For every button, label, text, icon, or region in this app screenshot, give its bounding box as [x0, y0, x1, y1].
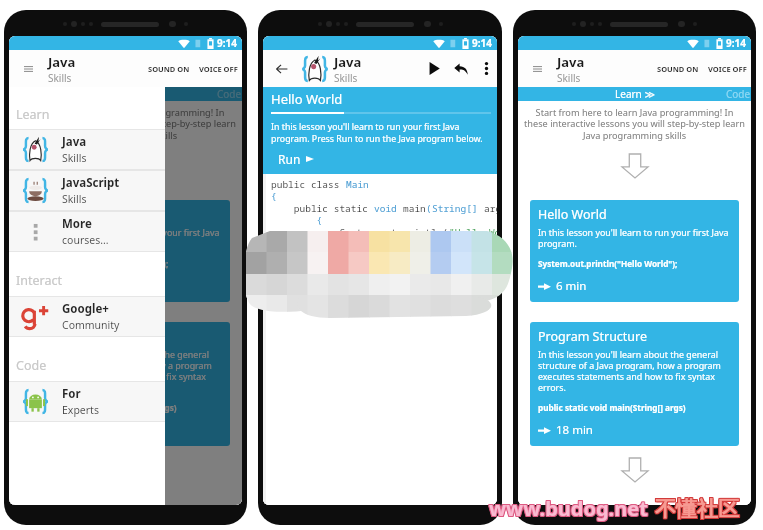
staticText: 不懂社区: [656, 497, 740, 523]
staticText: void: [374, 202, 403, 214]
staticText: Java: [557, 53, 585, 71]
staticText: Learn: [16, 106, 50, 123]
staticText: Skills: [334, 71, 358, 85]
staticText: Skills: [62, 151, 87, 165]
staticText: www.budog.net: [489, 494, 648, 521]
staticText: Program Structure: [538, 328, 648, 345]
button[interactable]: SOUND ON: [145, 50, 193, 87]
staticText: 不懂社区: [655, 496, 739, 522]
button[interactable]: Code: [207, 87, 242, 101]
staticText: public static: [271, 202, 374, 214]
staticText: In this lesson you'll learn about the ge…: [29, 348, 222, 394]
staticText: public class: [271, 178, 346, 190]
staticText: 9:14: [726, 36, 746, 50]
staticText: {: [271, 190, 277, 202]
staticText: Hello World: [271, 90, 343, 108]
staticText: public static void main(String[] args): [538, 402, 686, 413]
staticText: JavaScript: [62, 175, 120, 191]
staticText: Java: [48, 53, 76, 71]
button[interactable]: Hello World: [530, 200, 739, 302]
staticText: 18 min: [556, 422, 593, 438]
staticText: For: [62, 386, 81, 402]
staticText: 9:14: [217, 36, 237, 50]
staticText: 不懂社区: [654, 497, 738, 523]
button[interactable]: SOUND ON: [654, 50, 702, 87]
staticText: Start from here to learn Java programmin…: [14, 106, 237, 142]
staticText: Interact: [16, 272, 62, 289]
staticText: www.budog.net: [489, 495, 648, 522]
button[interactable]: JavaScript: [9, 170, 165, 211]
staticText: SOUND ON: [657, 64, 699, 74]
staticText: Program Structure: [29, 328, 139, 345]
staticText: "Hello World": [449, 226, 497, 238]
staticText: More: [62, 216, 92, 232]
button[interactable]: Google+: [9, 296, 165, 337]
button[interactable]: Undo: [447, 50, 475, 87]
button[interactable]: Learn ≫: [603, 87, 667, 101]
staticText: (: [426, 202, 432, 214]
staticText: String[]: [432, 202, 484, 214]
staticText: 不懂社区: [654, 495, 738, 521]
staticText: Learn ≫: [615, 87, 655, 101]
button[interactable]: Program Structure: [21, 322, 230, 446]
button[interactable]: Run: [271, 150, 314, 168]
staticText: System: [271, 226, 374, 238]
staticText: VOICE OFF: [708, 64, 747, 74]
staticText: main: [403, 202, 426, 214]
button[interactable]: Hello World: [21, 200, 230, 302]
staticText: {: [271, 214, 323, 226]
staticText: arg: [484, 202, 497, 214]
staticText: www.budog.net: [488, 494, 647, 521]
staticText: Code: [217, 87, 242, 101]
staticText: Java: [334, 53, 362, 71]
button[interactable]: Open navigation drawer: [9, 50, 48, 87]
staticText: www.budog.net: [490, 495, 649, 522]
button[interactable]: VOICE OFF: [702, 50, 751, 87]
staticText: www.budog.net: [489, 496, 648, 523]
staticText: Hello World: [538, 206, 607, 223]
staticText: public static void main(String[] args): [29, 402, 177, 413]
staticText: 不懂社区: [655, 497, 739, 523]
staticText: Community: [62, 318, 120, 332]
button[interactable]: More: [9, 211, 165, 252]
staticText: Java: [62, 134, 87, 150]
staticText: 不懂社区: [655, 495, 739, 521]
staticText: 不懂社区: [656, 495, 740, 521]
button[interactable]: More options: [475, 50, 497, 87]
staticText: Skills: [557, 71, 581, 85]
staticText: VOICE OFF: [199, 64, 238, 74]
staticText: .out.println(: [374, 226, 449, 238]
button[interactable]: Program Structure: [530, 322, 739, 446]
staticText: 不懂社区: [656, 496, 740, 522]
button[interactable]: Back: [263, 50, 300, 87]
staticText: In this lesson you'll learn to run your …: [538, 226, 731, 250]
staticText: Code: [16, 357, 47, 374]
staticText: In this lesson you'll learn about the ge…: [538, 348, 731, 394]
button[interactable]: Code: [716, 87, 751, 101]
staticText: 6 min: [47, 278, 78, 294]
staticText: www.budog.net: [490, 494, 649, 521]
staticText: System.out.println("Hello World");: [538, 258, 678, 269]
button[interactable]: Open navigation drawer: [518, 50, 557, 87]
staticText: Code: [726, 87, 751, 101]
staticText: courses...: [62, 233, 109, 247]
staticText: SOUND ON: [148, 64, 190, 74]
button[interactable]: For: [9, 381, 165, 422]
button[interactable]: Run: [421, 50, 447, 87]
staticText: System.out.println("Hello World");: [29, 258, 169, 269]
staticText: www.budog.net: [490, 496, 649, 523]
staticText: www.budog.net: [488, 495, 647, 522]
button[interactable]: VOICE OFF: [193, 50, 242, 87]
button[interactable]: Java: [9, 129, 165, 170]
staticText: 9:14: [472, 36, 492, 50]
staticText: 不懂社区: [654, 496, 738, 522]
staticText: www.budog.net: [488, 496, 647, 523]
staticText: Start from here to learn Java programmin…: [523, 106, 746, 142]
staticText: Run: [278, 151, 301, 167]
staticText: Experts: [62, 403, 99, 417]
staticText: Skills: [48, 71, 72, 85]
staticText: Main: [346, 178, 369, 190]
staticText: In this lesson you'll learn to run your …: [29, 226, 222, 250]
